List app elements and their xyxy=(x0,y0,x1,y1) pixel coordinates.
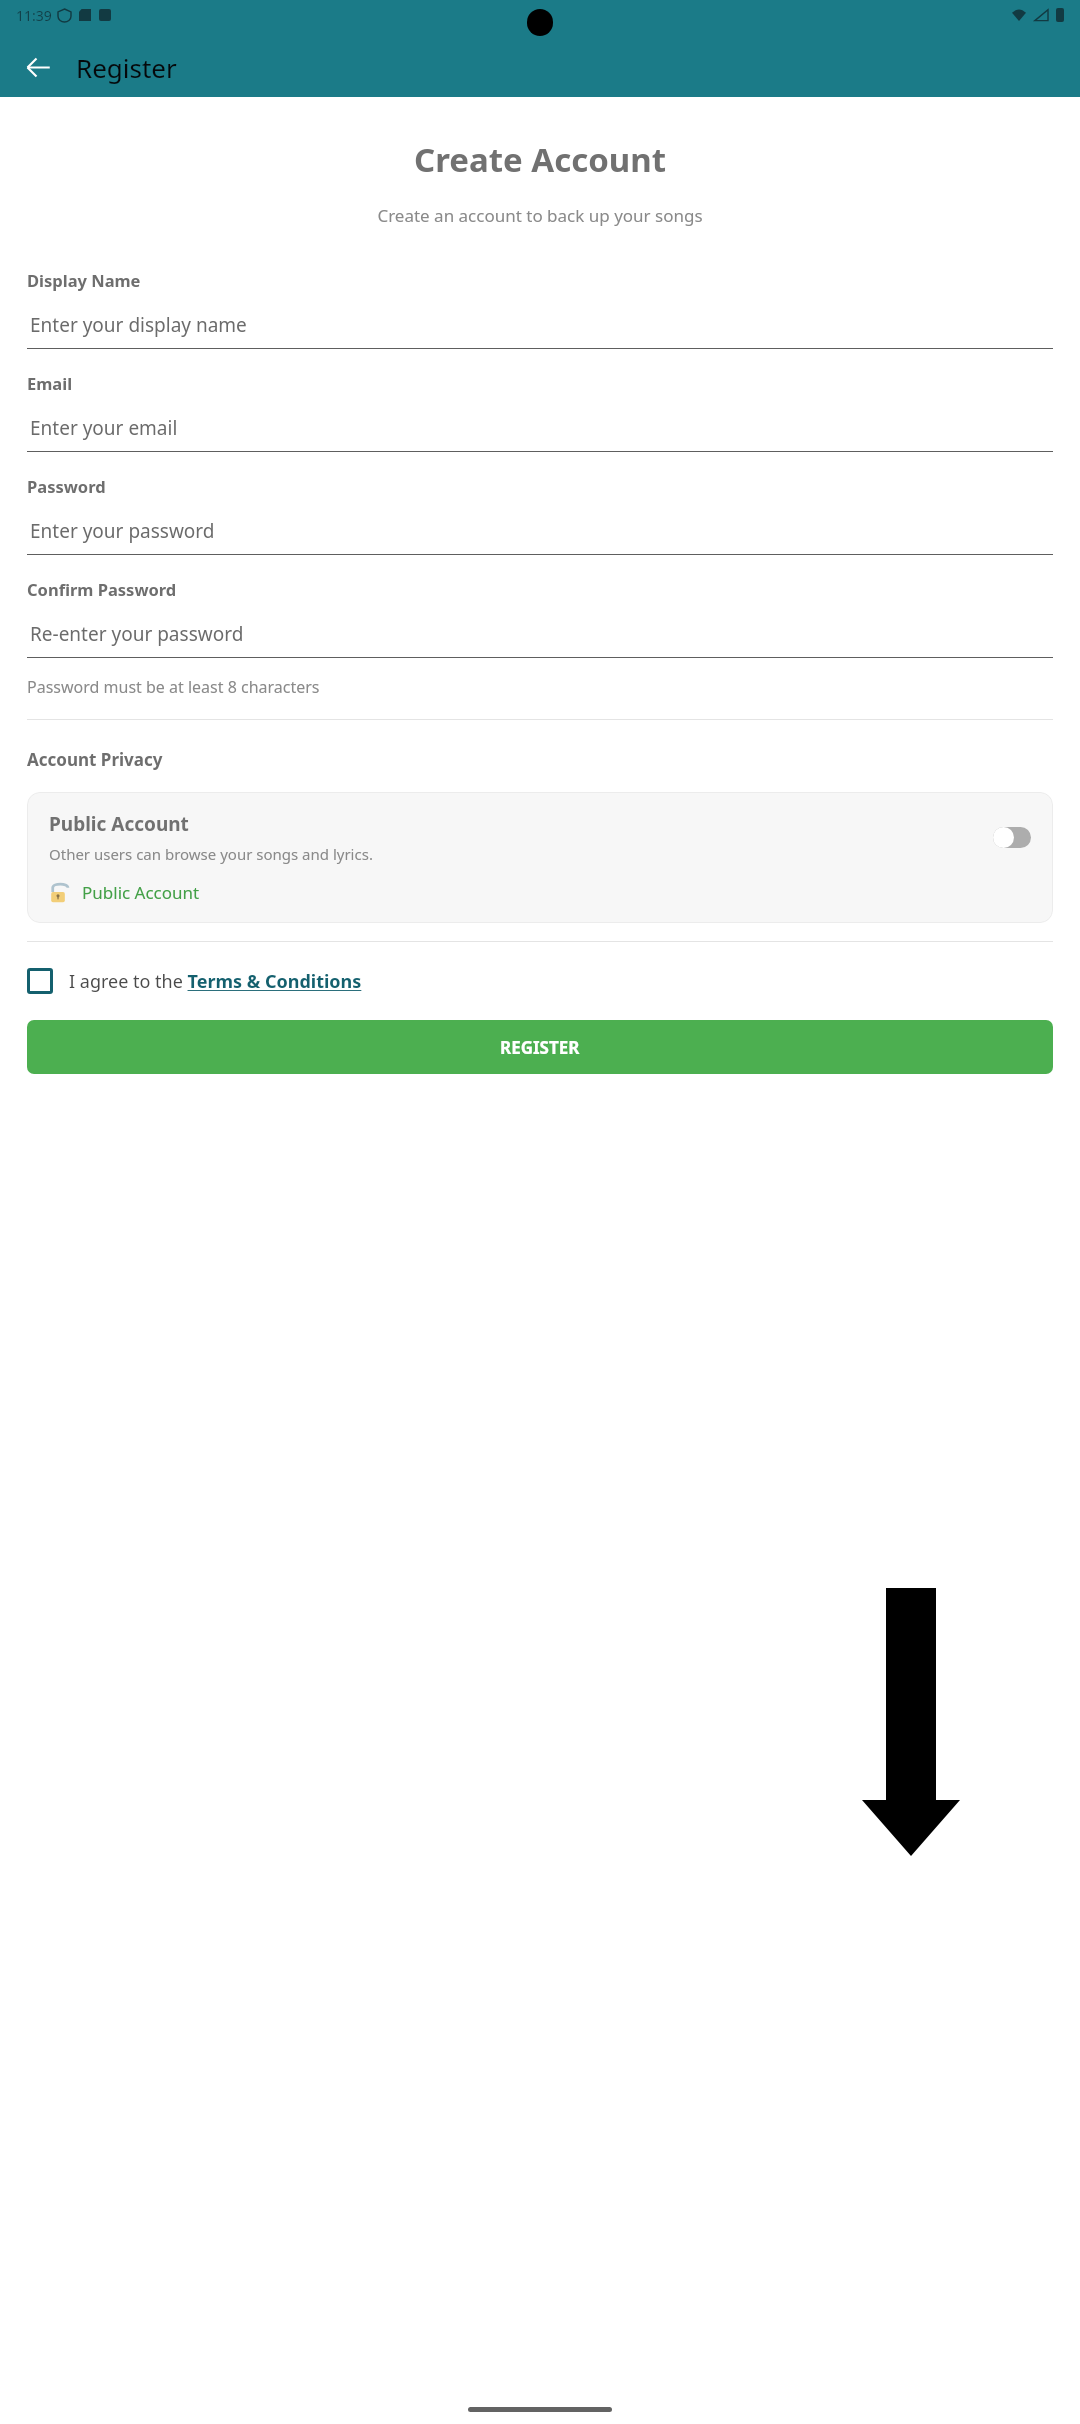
staticText: Display Name xyxy=(27,269,141,291)
staticText: Password must be at least 8 characters xyxy=(27,676,320,698)
button[interactable]: Public Account xyxy=(27,792,1053,923)
button[interactable]: Enter your display name xyxy=(27,302,1053,349)
staticText: Create an account to back up your songs xyxy=(27,204,1053,227)
staticText: Create Account xyxy=(27,137,1053,182)
staticText: Enter your password xyxy=(30,518,215,544)
button[interactable]: Enter your email xyxy=(27,405,1053,452)
staticText: REGISTER xyxy=(500,1036,580,1059)
staticText: Confirm Password xyxy=(27,578,177,600)
button[interactable]: Public account toggle xyxy=(993,827,1031,848)
staticText: Password xyxy=(27,475,106,497)
staticText: 11:39 xyxy=(16,6,52,25)
staticText: Re-enter your password xyxy=(30,621,244,647)
staticText: Enter your email xyxy=(30,415,178,441)
button[interactable]: I agree to the Terms & Conditions xyxy=(27,968,1053,994)
staticText: Public Account xyxy=(49,811,189,837)
staticText: Email xyxy=(27,372,73,394)
staticText: Account Privacy xyxy=(27,748,163,771)
staticText: Other users can browse your songs and ly… xyxy=(49,844,373,864)
staticText: Register xyxy=(76,50,177,85)
staticText: I agree to the Terms & Conditions xyxy=(69,969,362,994)
button[interactable]: Enter your password xyxy=(27,508,1053,555)
button[interactable]: Back xyxy=(14,43,62,91)
staticText: Enter your display name xyxy=(30,312,247,338)
button[interactable]: REGISTER xyxy=(27,1020,1053,1074)
staticText: Public Account xyxy=(82,881,200,904)
button[interactable]: Re-enter your password xyxy=(27,611,1053,658)
